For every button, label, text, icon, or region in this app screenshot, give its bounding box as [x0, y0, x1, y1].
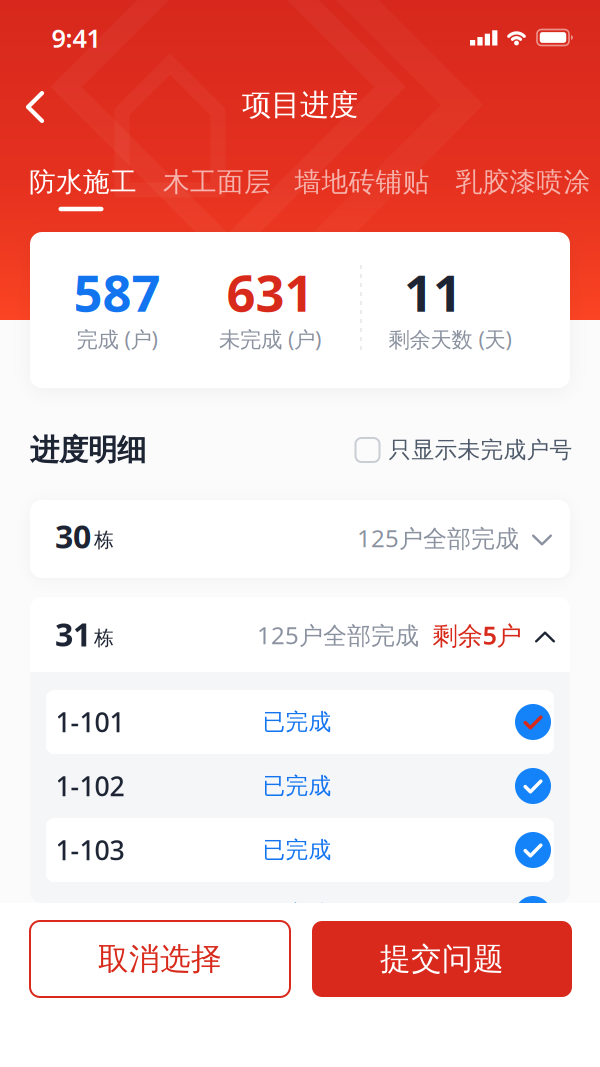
- staticText: 木工面层: [163, 166, 271, 198]
- button[interactable]: 30: [30, 500, 570, 578]
- staticText: 1-101: [55, 704, 124, 740]
- button[interactable]: 防水施工: [30, 158, 140, 214]
- staticText: 剩余天数 (天): [388, 325, 511, 353]
- staticText: 项目进度: [242, 87, 358, 123]
- staticText: 剩余5户: [432, 618, 521, 652]
- staticText: 631: [226, 258, 313, 326]
- staticText: 31: [55, 613, 91, 655]
- staticText: 栋: [94, 626, 114, 650]
- staticText: 栋: [94, 528, 114, 552]
- staticText: 125户全部完成: [257, 619, 419, 651]
- staticText: 完成 (户): [76, 325, 157, 353]
- staticText: 已完成: [262, 836, 331, 864]
- staticText: 已完成: [262, 772, 331, 800]
- button[interactable]: 1-101: [46, 690, 554, 754]
- staticText: 30: [55, 515, 91, 557]
- button[interactable]: 木工面层: [163, 166, 271, 198]
- button[interactable]: Back: [26, 91, 44, 122]
- staticText: 乳胶漆喷涂: [455, 166, 590, 198]
- staticText: 墙地砖铺贴: [294, 166, 429, 198]
- staticText: 已完成: [262, 708, 331, 736]
- staticText: 已完成: [262, 900, 331, 928]
- staticText: 进度明细: [30, 432, 146, 468]
- button[interactable]: 1-104: [46, 882, 554, 946]
- staticText: 1-103: [55, 832, 124, 868]
- button[interactable]: 1-103: [46, 818, 554, 882]
- button[interactable]: 乳胶漆喷涂: [455, 166, 590, 198]
- staticText: 9:41: [51, 21, 100, 55]
- staticText: 防水施工: [29, 166, 137, 198]
- staticText: 提交问题: [380, 940, 504, 978]
- button[interactable]: 1-102: [46, 754, 554, 818]
- staticText: 11: [404, 258, 462, 326]
- staticText: 1-104: [55, 896, 124, 932]
- button[interactable]: 提交问题: [312, 921, 572, 997]
- staticText: 取消选择: [98, 940, 222, 978]
- button[interactable]: 只显示未完成户号: [355, 432, 572, 468]
- button[interactable]: 31: [30, 597, 570, 672]
- staticText: 125户全部完成: [357, 522, 519, 554]
- staticText: 1-102: [55, 768, 124, 804]
- button[interactable]: 墙地砖铺贴: [294, 166, 429, 198]
- staticText: 未完成 (户): [219, 325, 321, 353]
- staticText: 只显示未完成户号: [388, 436, 572, 464]
- button[interactable]: 取消选择: [30, 921, 290, 997]
- staticText: 587: [73, 258, 160, 326]
